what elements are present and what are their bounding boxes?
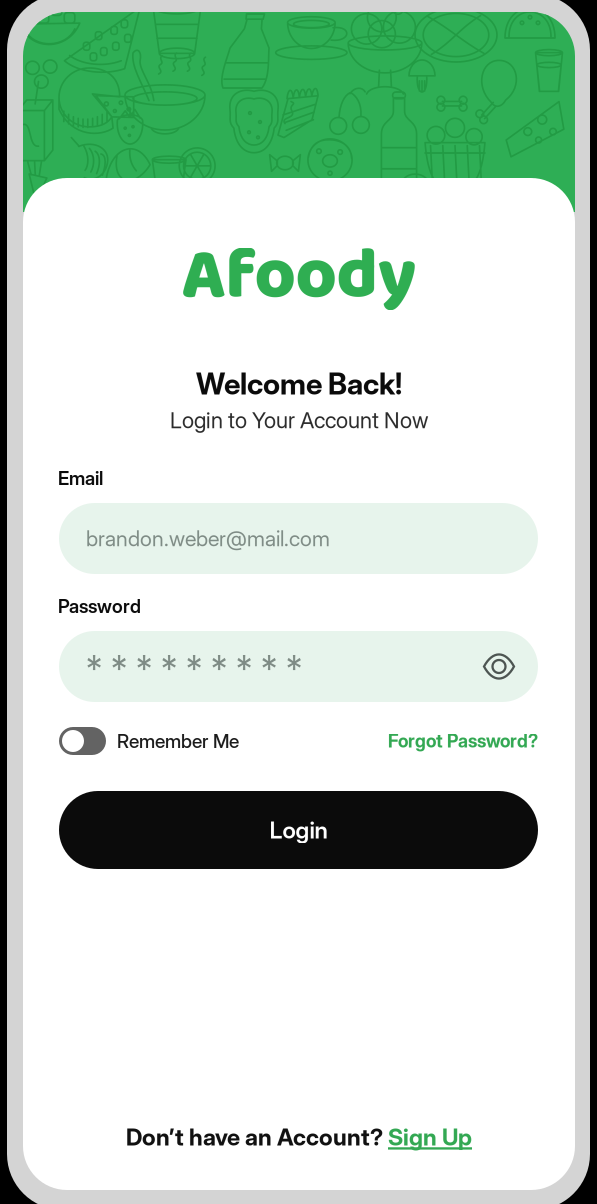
staticText: Email	[58, 467, 103, 490]
staticText: Password	[58, 595, 141, 618]
staticText: * * * * * * * * *	[86, 647, 302, 689]
staticText: Welcome Back!	[196, 366, 402, 401]
staticText: Sign Up	[388, 1123, 472, 1151]
button[interactable]: Show password	[475, 642, 523, 690]
button[interactable]: Forgot Password?	[388, 719, 538, 763]
button[interactable]: Login	[59, 791, 538, 869]
button[interactable]: Sign Up	[388, 1123, 472, 1151]
staticText: brandon.weber@mail.com	[86, 526, 330, 551]
staticText: Don’t have an Account?	[126, 1123, 388, 1151]
staticText: Login	[269, 816, 327, 844]
staticText: Login to Your Account Now	[170, 407, 428, 433]
staticText: Remember Me	[117, 729, 239, 752]
button[interactable]: Remember Me	[59, 716, 239, 766]
staticText: Afoody	[181, 220, 416, 333]
staticText: Forgot Password?	[388, 730, 538, 752]
